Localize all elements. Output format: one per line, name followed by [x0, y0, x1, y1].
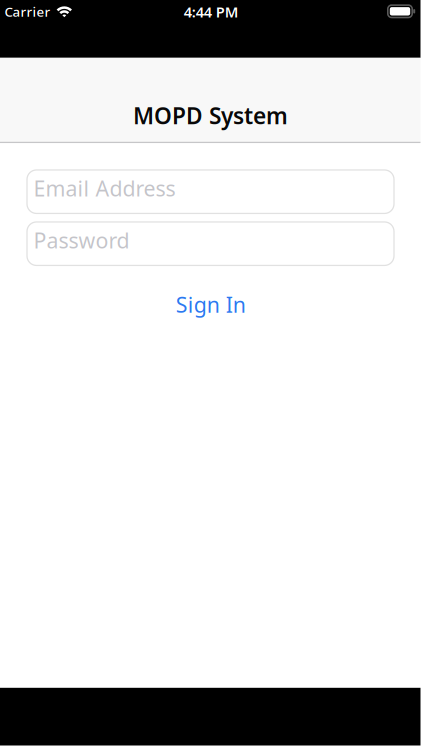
staticText: Sign In — [176, 290, 246, 318]
staticText: 4:44 PM — [184, 2, 239, 22]
button[interactable]: Password — [27, 222, 394, 265]
staticText: Email Address — [33, 174, 175, 202]
button[interactable]: Sign In — [176, 290, 246, 318]
button[interactable]: Email Address — [27, 170, 394, 213]
staticText: Password — [33, 226, 129, 254]
staticText: MOPD System — [133, 100, 288, 130]
staticText: Carrier — [4, 3, 50, 20]
